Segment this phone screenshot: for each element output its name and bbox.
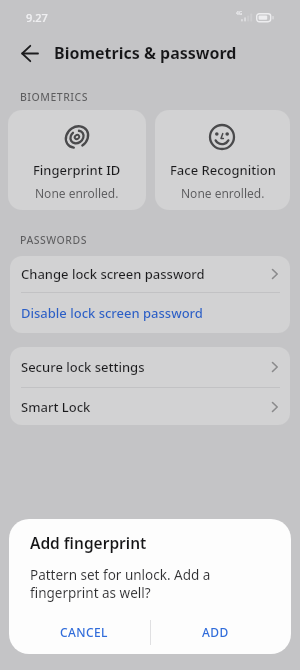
button[interactable]: Smart Lock: [10, 388, 290, 425]
button[interactable]: [13, 38, 47, 69]
staticText: CANCEL: [60, 624, 108, 640]
staticText: Biometrics & password: [54, 42, 237, 64]
staticText: None enrolled.: [35, 185, 119, 201]
button[interactable]: CANCEL: [34, 618, 134, 646]
staticText: Smart Lock: [21, 398, 91, 416]
button[interactable]: Fingerprint ID: [8, 110, 146, 210]
button[interactable]: ADD: [165, 618, 265, 646]
staticText: BIOMETRICS: [20, 90, 88, 104]
staticText: PASSWORDS: [20, 233, 87, 247]
staticText: Face Recognition: [170, 161, 276, 179]
staticText: Fingerprint ID: [33, 161, 121, 179]
staticText: Pattern set for unlock. Add a fingerprin…: [30, 566, 211, 602]
staticText: None enrolled.: [181, 185, 265, 201]
button[interactable]: Secure lock settings: [10, 347, 290, 387]
button[interactable]: Disable lock screen password: [10, 293, 290, 333]
staticText: ADD: [202, 624, 229, 640]
button[interactable]: Change lock screen password: [10, 256, 290, 292]
staticText: Disable lock screen password: [21, 304, 203, 322]
button[interactable]: Face Recognition: [155, 110, 290, 210]
staticText: 9.27: [26, 10, 48, 25]
staticText: 4G: [236, 10, 243, 17]
staticText: Add fingerprint: [30, 532, 147, 553]
staticText: Secure lock settings: [21, 358, 145, 376]
staticText: Change lock screen password: [21, 265, 205, 283]
